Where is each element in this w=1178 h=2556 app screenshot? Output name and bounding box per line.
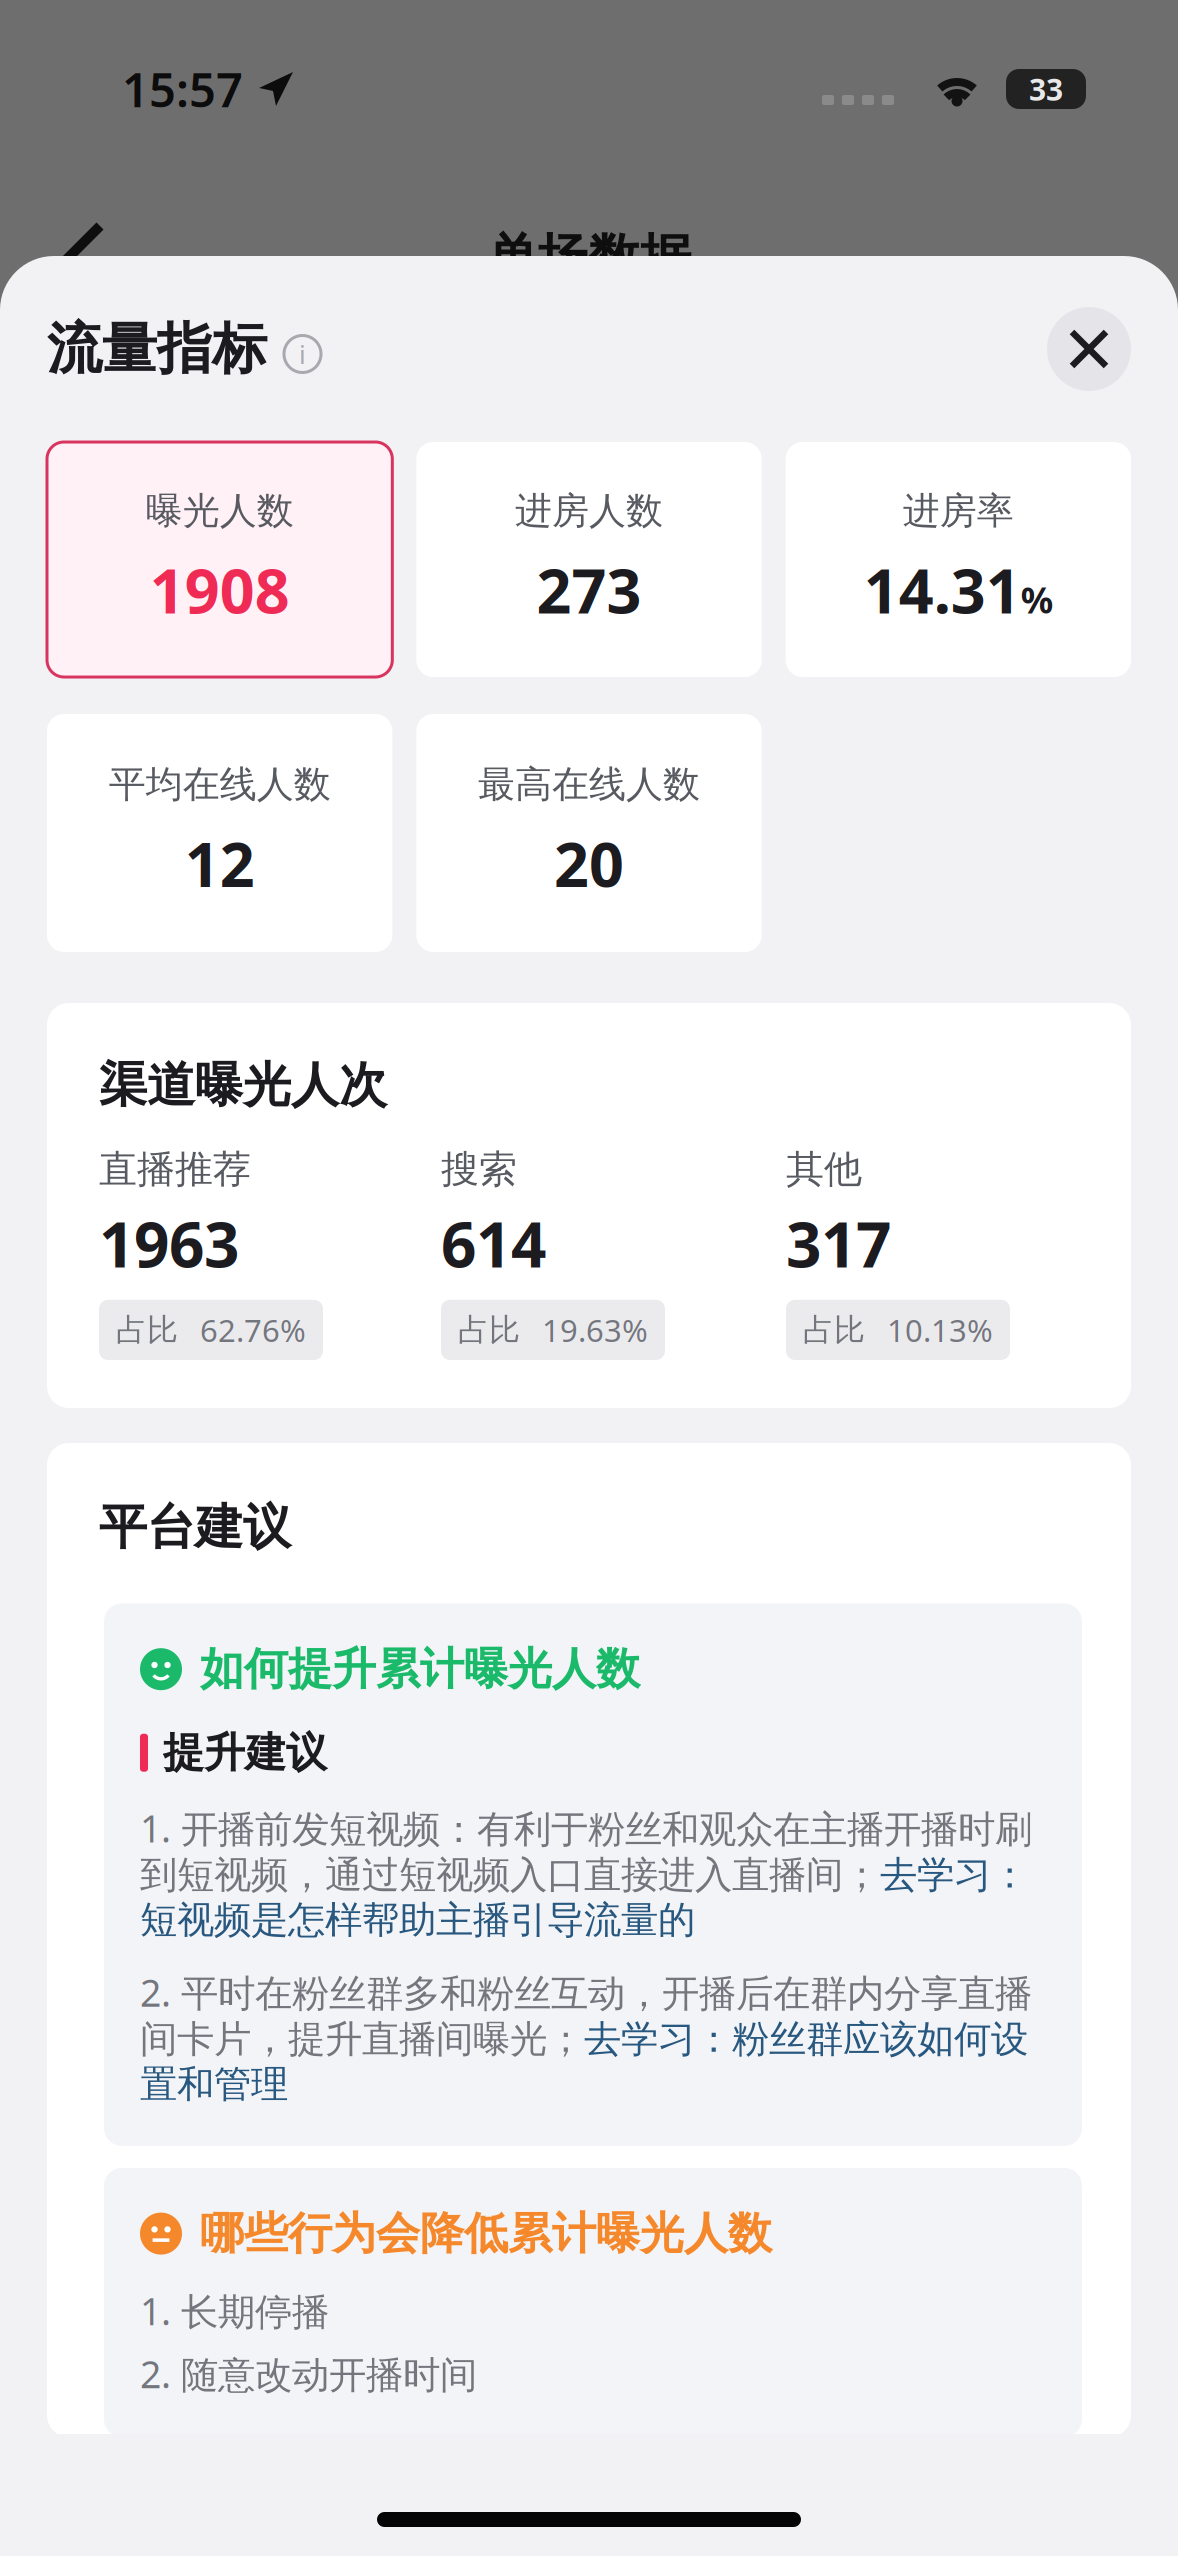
staticText: 317 bbox=[786, 1201, 891, 1286]
staticText: 进房率 bbox=[903, 488, 1014, 534]
staticText: 平台建议 bbox=[99, 1497, 291, 1557]
staticText: 20 bbox=[554, 822, 624, 905]
staticText: 占比 bbox=[803, 1310, 865, 1349]
button[interactable]: 平均在线人数 bbox=[47, 714, 392, 952]
staticText: 14.31 bbox=[864, 548, 1021, 631]
staticText: 进房人数 bbox=[515, 488, 663, 534]
staticText: 614 bbox=[441, 1201, 546, 1286]
staticText: 占比 bbox=[116, 1310, 178, 1349]
staticText: i bbox=[299, 336, 306, 372]
button[interactable]: 进房人数 bbox=[416, 442, 762, 677]
staticText: 哪些行为会降低累计曝光人数 bbox=[200, 2206, 772, 2261]
staticText: 其他 bbox=[786, 1145, 862, 1193]
button[interactable]: 关闭 bbox=[1047, 307, 1131, 391]
button[interactable]: 进房率 bbox=[786, 442, 1131, 677]
staticText: 10.13% bbox=[887, 1309, 993, 1351]
staticText: 15:57 bbox=[122, 57, 243, 121]
staticText: 直播推荐 bbox=[99, 1145, 251, 1193]
staticText: 单场数据 bbox=[487, 226, 691, 290]
staticText: 273 bbox=[536, 548, 641, 631]
staticText: 12 bbox=[185, 822, 255, 905]
staticText: 渠道曝光人次 bbox=[99, 1055, 387, 1115]
staticText: 19.63% bbox=[542, 1309, 648, 1351]
staticText: 1963 bbox=[99, 1201, 239, 1286]
staticText: 占比 bbox=[458, 1310, 520, 1349]
staticText: % bbox=[1021, 575, 1053, 624]
button[interactable]: 曝光人数 bbox=[47, 442, 392, 677]
staticText: 1. 长期停播 bbox=[140, 2285, 329, 2336]
staticText: 搜索 bbox=[441, 1145, 517, 1193]
staticText: 平均在线人数 bbox=[109, 761, 331, 808]
staticText: 1. 开播前发短视频：有利于粉丝和观众在主播开播时刷到短视频，通过短视频入口直接… bbox=[140, 1803, 1032, 1944]
button[interactable]: 最高在线人数 bbox=[416, 714, 762, 952]
staticText: 提升建议 bbox=[163, 1727, 327, 1779]
staticText: 33 bbox=[1029, 69, 1063, 109]
staticText: 2. 随意改动开播时间 bbox=[140, 2348, 477, 2399]
staticText: 曝光人数 bbox=[146, 488, 294, 534]
staticText: 62.76% bbox=[200, 1309, 306, 1351]
staticText: 1908 bbox=[150, 548, 290, 631]
staticText: 如何提升累计曝光人数 bbox=[200, 1641, 640, 1697]
staticText: 最高在线人数 bbox=[478, 761, 700, 808]
staticText: 流量指标 bbox=[47, 314, 267, 384]
staticText: 2. 平时在粉丝群多和粉丝互动，开播后在群内分享直播间卡片，提升直播间曝光；去学… bbox=[140, 1967, 1032, 2108]
